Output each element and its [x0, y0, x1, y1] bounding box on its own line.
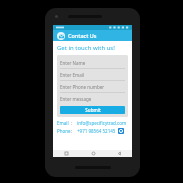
staticText: Enter Phone number — [60, 84, 105, 90]
staticText: info@specificytrad.com — [77, 120, 127, 126]
button[interactable]: Phone — [57, 128, 128, 134]
button[interactable]: Enter Phone number — [60, 81, 125, 93]
staticText: : — [71, 120, 73, 126]
staticText: Phone — [57, 128, 71, 134]
button[interactable]: Submit — [60, 106, 125, 114]
button[interactable]: Email — [57, 120, 128, 126]
staticText: Email — [57, 120, 71, 126]
staticText: Enter message — [60, 96, 92, 102]
staticText: Enter Email — [60, 72, 85, 78]
staticText: : — [71, 128, 73, 134]
staticText: Contact Us — [68, 32, 97, 39]
button[interactable]: Home — [80, 150, 106, 157]
staticText: +971 98564 52145 — [77, 128, 116, 134]
staticText: Enter Name — [60, 60, 86, 66]
staticText: Submit — [85, 107, 101, 113]
button[interactable]: Enter message — [60, 93, 125, 104]
button[interactable]: Back — [106, 150, 132, 157]
button[interactable]: Recents — [53, 150, 80, 157]
button[interactable]: Enter Name — [60, 57, 125, 69]
staticText: Get in touch with us! — [57, 44, 115, 52]
button[interactable]: WhatsApp — [118, 128, 124, 134]
button[interactable]: Enter Email — [60, 69, 125, 81]
